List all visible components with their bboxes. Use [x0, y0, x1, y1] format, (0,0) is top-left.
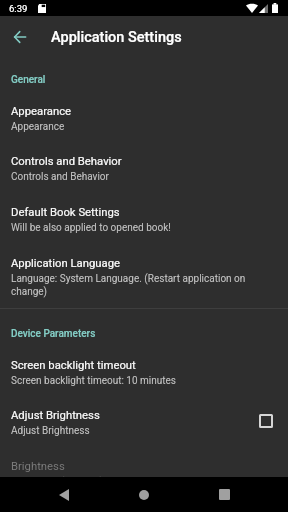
button[interactable]: Back	[40, 477, 88, 512]
staticText: Adjust Brightness	[11, 409, 100, 422]
staticText: Appearance	[11, 121, 65, 133]
staticText: Adjust Brightness	[11, 425, 90, 437]
staticText: Application Language	[11, 257, 121, 270]
staticText: Device Parameters	[11, 328, 96, 340]
button[interactable]: Default Book Settings	[0, 206, 288, 234]
button[interactable]: Application Language	[0, 257, 288, 298]
staticText: General	[11, 74, 46, 86]
staticText: Application Settings	[51, 29, 182, 46]
button[interactable]: Screen backlight timeout	[0, 359, 288, 387]
button[interactable]: Controls and Behavior	[0, 155, 288, 183]
staticText: Controls and Behavior	[11, 155, 122, 168]
staticText: Language: System Language. (Restart appl…	[11, 273, 277, 298]
staticText: Default Book Settings	[11, 206, 120, 219]
staticText: Will be also applied to opened book!	[11, 222, 171, 234]
staticText: Appearance	[11, 105, 72, 118]
staticText: 6:39	[9, 3, 28, 14]
staticText: Screen backlight timeout	[11, 359, 136, 372]
staticText: Controls and Behavior	[11, 171, 109, 183]
button[interactable]: Brightness	[0, 460, 288, 488]
button[interactable]: Navigate up	[4, 21, 35, 52]
button[interactable]: Recent apps	[200, 477, 248, 512]
staticText: Brightness (1..100%)	[11, 476, 104, 488]
button[interactable]: Adjust Brightness checkbox	[259, 414, 273, 428]
staticText: Brightness	[11, 460, 65, 473]
staticText: Screen backlight timeout: 10 minutes	[11, 375, 177, 387]
button[interactable]: Appearance	[0, 105, 288, 133]
button[interactable]: Home	[120, 477, 168, 512]
button[interactable]: Adjust Brightness	[0, 409, 288, 437]
